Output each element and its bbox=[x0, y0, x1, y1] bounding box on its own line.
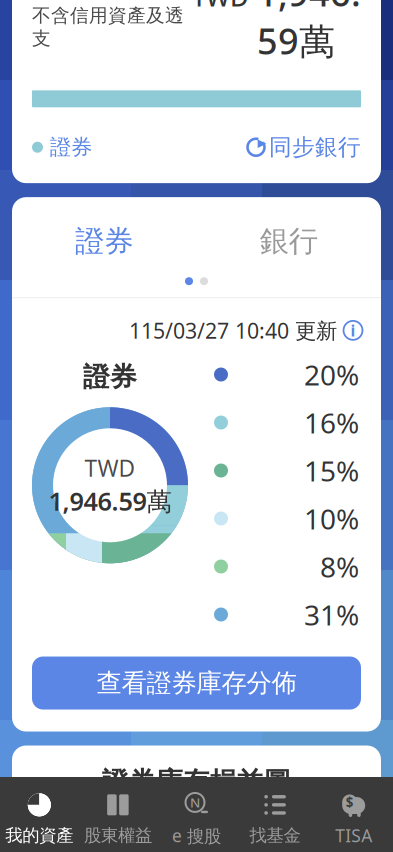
staticText: 31% bbox=[304, 596, 359, 633]
button[interactable]: 查看證券庫存分佈 bbox=[32, 656, 361, 709]
button[interactable]: ▸ bbox=[246, 133, 361, 161]
button[interactable]: 銀行 bbox=[196, 219, 381, 263]
staticText: 1,946.59萬 bbox=[257, 0, 361, 64]
staticText: 證券庫存損益圖 bbox=[102, 765, 291, 798]
staticText: 10% bbox=[304, 500, 359, 537]
staticText: 證券 bbox=[50, 134, 92, 160]
button[interactable]: 我的資產 bbox=[0, 791, 79, 847]
staticText: 證券 bbox=[83, 360, 137, 393]
staticText: e 搜股 bbox=[172, 824, 221, 847]
staticText: 查看證券庫存分佈 bbox=[96, 667, 296, 699]
button[interactable]: $ bbox=[314, 791, 393, 847]
staticText: TWD bbox=[192, 0, 249, 13]
staticText: 115/03/27 10:40 更新 bbox=[129, 316, 337, 344]
staticText: TISA bbox=[335, 824, 372, 847]
button[interactable]: N bbox=[157, 791, 236, 847]
staticText: 1,946.59萬 bbox=[48, 484, 171, 518]
button[interactable]: 證券 bbox=[12, 219, 196, 263]
staticText: $ bbox=[346, 793, 354, 811]
staticText: 不含信用資產及透支 bbox=[32, 4, 184, 50]
staticText: 我的資產 bbox=[5, 825, 73, 846]
staticText: 8% bbox=[320, 548, 359, 585]
staticText: 15% bbox=[304, 452, 359, 489]
staticText: 20% bbox=[304, 356, 359, 393]
staticText: 股東權益 bbox=[84, 825, 152, 846]
button[interactable]: 股東權益 bbox=[79, 791, 157, 847]
staticText: N bbox=[190, 794, 200, 811]
staticText: 銀行 bbox=[260, 223, 318, 259]
button[interactable]: 找基金 bbox=[236, 791, 314, 847]
staticText: 同步銀行 bbox=[269, 133, 361, 161]
staticText: 找基金 bbox=[250, 825, 301, 846]
staticText: 16% bbox=[304, 404, 359, 441]
staticText: TWD bbox=[84, 453, 135, 483]
staticText: i bbox=[350, 320, 355, 341]
staticText: ▸ bbox=[257, 132, 266, 152]
button[interactable]: 說明 bbox=[343, 320, 363, 340]
staticText: 證券 bbox=[75, 223, 133, 259]
